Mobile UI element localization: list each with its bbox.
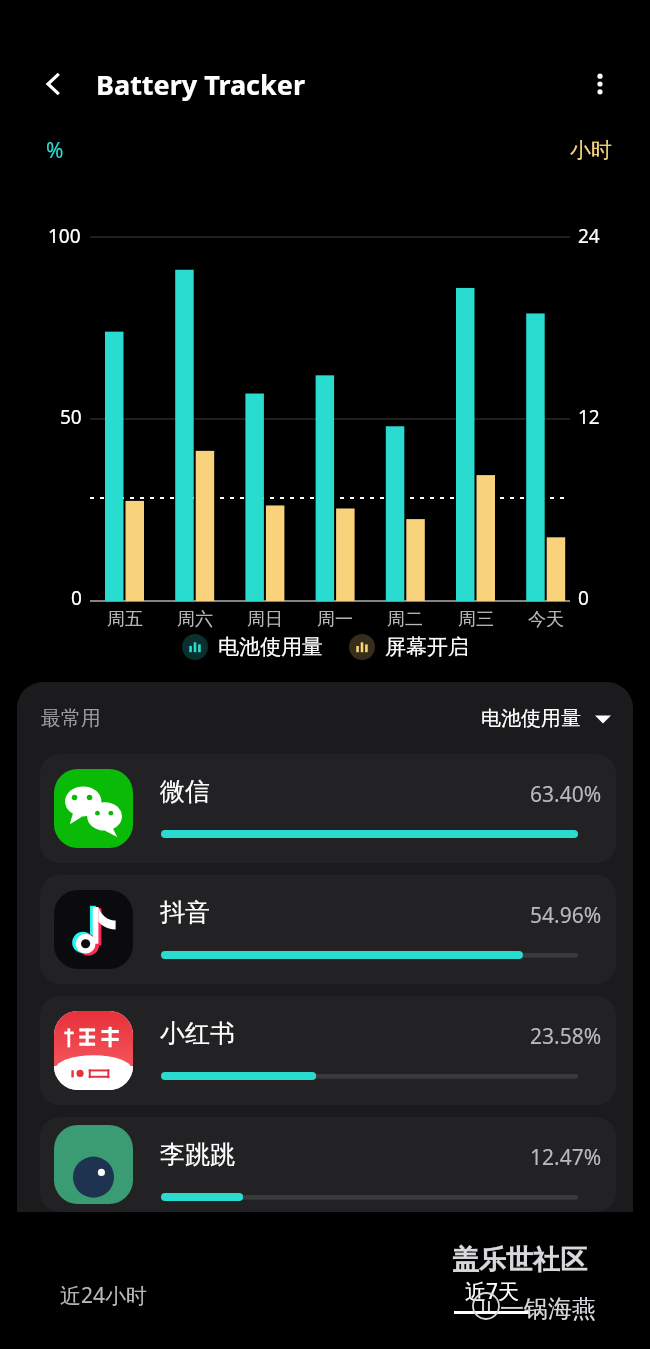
staticText: 小红书	[160, 1018, 235, 1049]
staticText: 最常用	[41, 706, 101, 731]
button[interactable]: 小红书	[40, 996, 616, 1105]
staticText: 周五	[99, 608, 151, 631]
button[interactable]: 李跳跳	[40, 1117, 616, 1212]
staticText: 100	[48, 223, 81, 249]
staticText: 周三	[450, 608, 502, 631]
staticText: 63.40%	[530, 780, 602, 809]
staticText: 0	[578, 585, 589, 611]
staticText: Battery Tracker	[96, 66, 305, 103]
staticText: 0	[71, 585, 82, 611]
staticText: 周二	[379, 608, 431, 631]
staticText: 23.58%	[530, 1022, 602, 1051]
staticText: 近7天	[465, 1277, 520, 1306]
staticText: 周六	[169, 608, 221, 631]
button[interactable]: More options	[574, 58, 626, 110]
staticText: %	[46, 136, 64, 165]
button[interactable]: 近24小时	[60, 1281, 148, 1310]
button[interactable]: 电池使用量	[481, 706, 615, 731]
staticText: 周日	[239, 608, 291, 631]
staticText: 50	[60, 404, 82, 430]
staticText: 电池使用量	[481, 706, 581, 731]
staticText: 微信	[160, 776, 210, 807]
staticText: 12	[578, 404, 600, 430]
staticText: 54.96%	[530, 901, 602, 930]
button[interactable]: 近7天	[454, 1277, 530, 1314]
button[interactable]: 抖音	[40, 875, 616, 984]
staticText: 电池使用量	[218, 634, 323, 660]
staticText: 一锅海燕	[500, 1294, 596, 1324]
staticText: 周一	[309, 608, 361, 631]
staticText: 屏幕开启	[385, 634, 469, 660]
staticText: 抖音	[160, 897, 210, 928]
staticText: 李跳跳	[160, 1139, 235, 1170]
button[interactable]: Back	[28, 58, 80, 110]
staticText: 盖乐世社区	[452, 1243, 587, 1277]
staticText: 今天	[520, 608, 572, 631]
staticText: 12.47%	[530, 1143, 602, 1172]
staticText: 小时	[570, 137, 612, 163]
staticText: 24	[578, 223, 600, 249]
staticText: 近24小时	[60, 1281, 148, 1310]
button[interactable]: 微信	[40, 754, 616, 863]
